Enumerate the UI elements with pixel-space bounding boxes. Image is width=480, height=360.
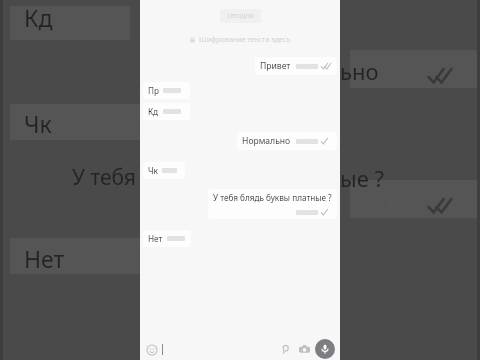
button[interactable]: Чк	[143, 162, 185, 179]
staticText: Чк	[148, 165, 158, 176]
staticText: сегодня	[227, 11, 254, 21]
staticText: ые ?	[340, 163, 385, 193]
staticText: Нет	[148, 233, 163, 244]
staticText: Кд	[148, 106, 159, 117]
button[interactable]: Attach	[278, 342, 292, 356]
button[interactable]: Camera	[297, 342, 311, 356]
button[interactable]: Привет	[255, 57, 337, 75]
staticText: У тебя блядь буквы платные ?	[213, 192, 332, 203]
button[interactable]: Пр	[143, 82, 190, 99]
staticText: Кд	[24, 2, 53, 33]
staticText: Нет	[24, 243, 65, 274]
staticText: Привет	[260, 60, 291, 72]
staticText: Нормально	[242, 135, 291, 147]
button[interactable]: Emoji	[145, 343, 158, 356]
staticText: Чк	[24, 108, 52, 139]
button[interactable]: Нет	[143, 230, 191, 247]
button[interactable]: Send voice message	[315, 339, 335, 359]
staticText: Пр	[148, 85, 159, 96]
staticText: ьно	[340, 56, 379, 86]
staticText: Шифрование текста здесь	[199, 34, 291, 44]
button[interactable]: Кд	[143, 103, 190, 120]
button[interactable]: У тебя блядь буквы платные ?	[208, 189, 337, 219]
button[interactable]: Нормально	[237, 132, 337, 150]
staticText: У тебя	[72, 163, 136, 192]
